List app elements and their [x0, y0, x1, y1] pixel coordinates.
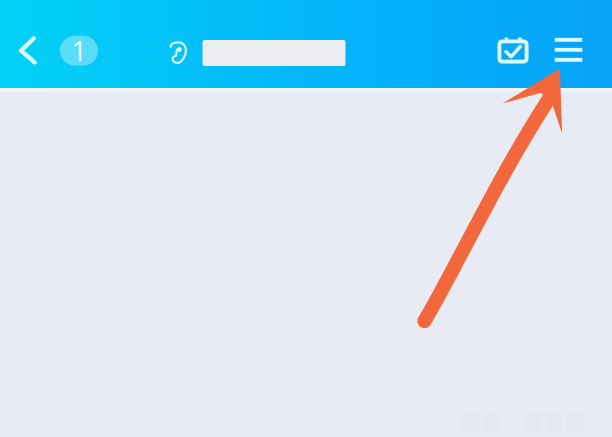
- button[interactable]: 1: [60, 36, 98, 66]
- button[interactable]: Listen: [159, 31, 199, 75]
- staticText: 1: [71, 33, 86, 68]
- button[interactable]: Search: [202, 40, 345, 66]
- button[interactable]: Menu: [545, 26, 591, 74]
- button[interactable]: Calendar: [489, 26, 537, 76]
- button[interactable]: Back: [4, 20, 52, 80]
